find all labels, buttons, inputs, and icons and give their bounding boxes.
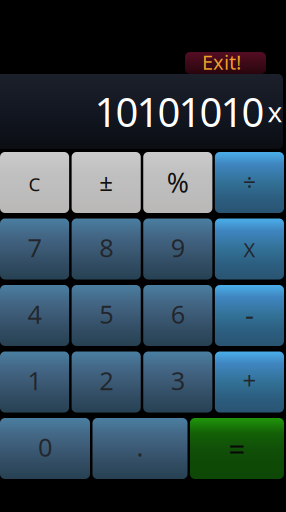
button[interactable]: 0: [0, 418, 90, 479]
staticText: 3: [171, 364, 185, 397]
staticText: 1: [28, 364, 42, 397]
staticText: .: [136, 430, 143, 464]
staticText: 7: [28, 231, 42, 264]
button[interactable]: +: [215, 351, 284, 412]
staticText: X: [243, 236, 255, 263]
button[interactable]: ±: [72, 152, 141, 213]
button[interactable]: Exit!: [185, 52, 266, 74]
button[interactable]: 2: [72, 351, 141, 412]
button[interactable]: 7: [0, 218, 69, 279]
button[interactable]: -: [215, 285, 284, 346]
staticText: Exit!: [202, 49, 241, 75]
button[interactable]: .: [92, 418, 187, 479]
staticText: x: [267, 93, 282, 130]
button[interactable]: 3: [143, 351, 212, 412]
button[interactable]: 9: [143, 218, 212, 279]
staticText: 0: [38, 430, 52, 464]
button[interactable]: ÷: [215, 152, 284, 213]
staticText: 6: [171, 297, 185, 331]
staticText: 4: [28, 297, 42, 331]
button[interactable]: %: [143, 152, 212, 213]
staticText: %: [167, 165, 189, 200]
staticText: +: [242, 364, 256, 396]
staticText: =: [228, 428, 245, 467]
staticText: 5: [99, 297, 113, 331]
button[interactable]: 1: [0, 351, 69, 412]
staticText: -: [245, 295, 254, 332]
button[interactable]: 8: [72, 218, 141, 279]
button[interactable]: =: [190, 418, 284, 479]
staticText: 9: [171, 231, 185, 264]
staticText: C: [29, 172, 41, 196]
staticText: ÷: [243, 167, 256, 197]
button[interactable]: C: [0, 152, 69, 213]
staticText: ±: [99, 166, 113, 198]
staticText: 2: [99, 364, 113, 397]
button[interactable]: 5: [72, 285, 141, 346]
staticText: 10101010: [94, 85, 264, 138]
button[interactable]: 6: [143, 285, 212, 346]
button[interactable]: X: [215, 218, 284, 279]
button[interactable]: 4: [0, 285, 69, 346]
staticText: 8: [99, 231, 113, 264]
